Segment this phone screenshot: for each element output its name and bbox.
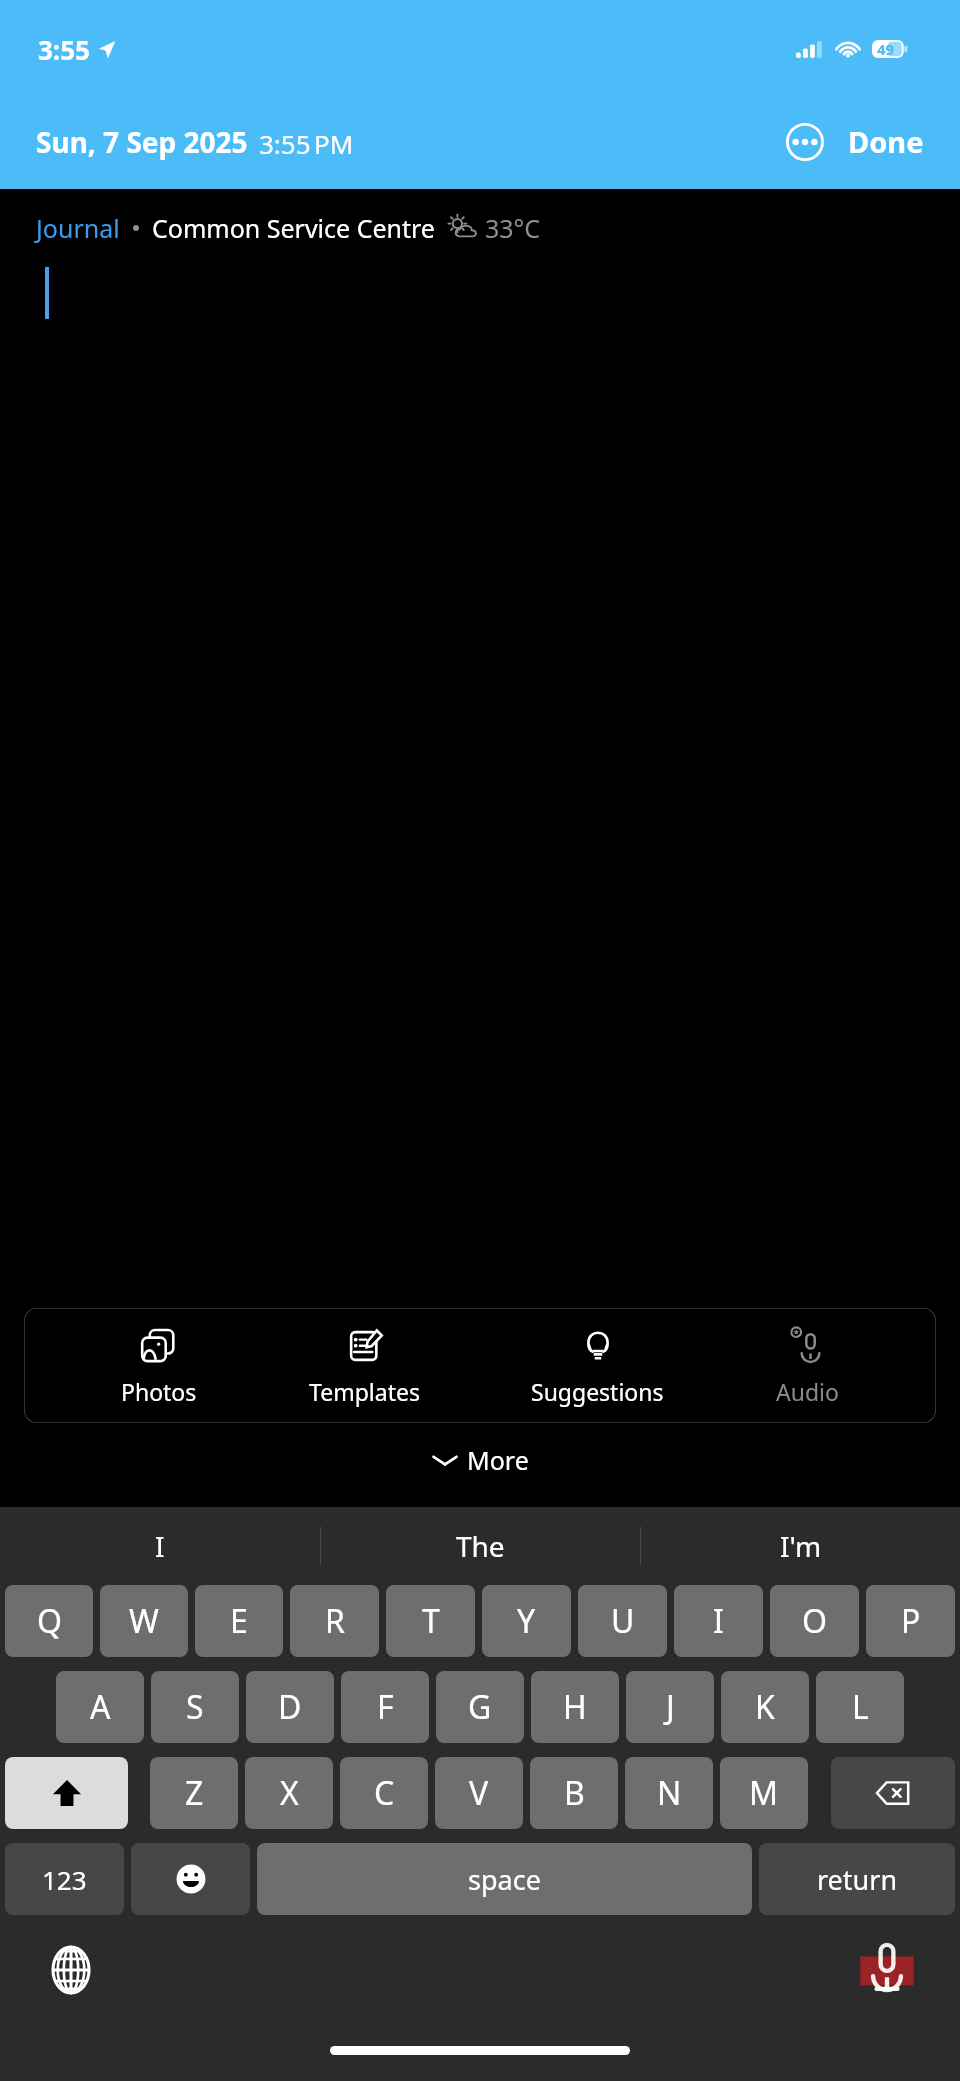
staticText: L: [852, 1685, 869, 1729]
staticText: O: [802, 1599, 827, 1643]
button[interactable]: Backspace: [831, 1757, 955, 1829]
button[interactable]: R: [290, 1585, 379, 1657]
button[interactable]: N: [625, 1757, 713, 1829]
staticText: J: [666, 1685, 675, 1729]
button[interactable]: Dictate: [858, 1939, 916, 1997]
staticText: return: [817, 1861, 898, 1898]
staticText: Q: [37, 1599, 62, 1643]
button[interactable]: Journal: [36, 211, 120, 245]
staticText: V: [469, 1771, 489, 1815]
staticText: More: [467, 1443, 529, 1477]
button[interactable]: More: [416, 1437, 545, 1483]
button[interactable]: D: [246, 1671, 334, 1743]
staticText: The: [456, 1527, 505, 1565]
staticText: F: [377, 1685, 394, 1729]
staticText: PM: [314, 126, 354, 161]
staticText: K: [755, 1685, 775, 1729]
staticText: Z: [185, 1771, 204, 1815]
staticText: Y: [517, 1599, 536, 1643]
button[interactable]: I: [0, 1507, 320, 1585]
staticText: W: [129, 1599, 159, 1643]
staticText: 49: [877, 39, 895, 59]
button[interactable]: Shift: [5, 1757, 128, 1829]
button[interactable]: Emoji: [131, 1843, 250, 1915]
staticText: Suggestions: [531, 1376, 664, 1407]
staticText: B: [564, 1771, 585, 1815]
button[interactable]: Templates: [295, 1319, 434, 1413]
button[interactable]: 123: [5, 1843, 124, 1915]
button[interactable]: Z: [150, 1757, 238, 1829]
button[interactable]: Y: [482, 1585, 571, 1657]
staticText: I: [155, 1527, 165, 1565]
button[interactable]: More options: [782, 119, 828, 165]
button[interactable]: return: [759, 1843, 955, 1915]
button[interactable]: The: [321, 1507, 640, 1585]
staticText: T: [422, 1599, 440, 1643]
button[interactable]: L: [816, 1671, 904, 1743]
button[interactable]: Photos: [107, 1319, 211, 1413]
button[interactable]: O: [770, 1585, 859, 1657]
staticText: D: [278, 1685, 302, 1729]
staticText: E: [230, 1599, 248, 1643]
staticText: 3:55: [259, 126, 311, 161]
staticText: Done: [848, 122, 924, 161]
button[interactable]: I: [674, 1585, 763, 1657]
button[interactable]: C: [340, 1757, 428, 1829]
button[interactable]: S: [151, 1671, 239, 1743]
staticText: I'm: [780, 1527, 822, 1565]
button[interactable]: Done: [842, 114, 930, 169]
button[interactable]: V: [435, 1757, 523, 1829]
staticText: Journal: [36, 211, 120, 245]
button[interactable]: T: [386, 1585, 475, 1657]
staticText: 123: [42, 1862, 87, 1897]
staticText: N: [657, 1771, 682, 1815]
staticText: M: [749, 1771, 779, 1815]
staticText: H: [563, 1685, 587, 1729]
button[interactable]: J: [626, 1671, 714, 1743]
button[interactable]: M: [720, 1757, 808, 1829]
staticText: G: [468, 1685, 492, 1729]
staticText: 3:55: [38, 32, 90, 67]
staticText: A: [90, 1685, 111, 1729]
button[interactable]: I'm: [641, 1507, 960, 1585]
staticText: Audio: [776, 1376, 839, 1407]
staticText: S: [186, 1685, 204, 1729]
staticText: I: [713, 1599, 724, 1643]
button[interactable]: A: [56, 1671, 144, 1743]
button[interactable]: Audio: [762, 1319, 853, 1413]
staticText: Sun, 7 Sep 2025: [36, 123, 248, 161]
staticText: Common Service Centre: [152, 211, 435, 245]
staticText: R: [325, 1599, 345, 1643]
staticText: 33°C: [485, 211, 541, 245]
staticText: space: [468, 1861, 541, 1898]
button[interactable]: U: [578, 1585, 667, 1657]
button[interactable]: K: [721, 1671, 809, 1743]
button[interactable]: Suggestions: [517, 1319, 678, 1413]
staticText: Templates: [309, 1376, 420, 1407]
button[interactable]: B: [530, 1757, 618, 1829]
button[interactable]: W: [100, 1585, 188, 1657]
button[interactable]: E: [195, 1585, 283, 1657]
button[interactable]: P: [866, 1585, 955, 1657]
staticText: C: [374, 1771, 395, 1815]
button[interactable]: Q: [5, 1585, 93, 1657]
button[interactable]: H: [531, 1671, 619, 1743]
button[interactable]: space: [257, 1843, 752, 1915]
staticText: P: [901, 1599, 921, 1643]
staticText: X: [280, 1771, 299, 1815]
button[interactable]: F: [341, 1671, 429, 1743]
button[interactable]: G: [436, 1671, 524, 1743]
staticText: Photos: [121, 1376, 197, 1407]
staticText: U: [611, 1599, 635, 1643]
button[interactable]: X: [245, 1757, 333, 1829]
button[interactable]: Change keyboard: [44, 1943, 98, 1997]
